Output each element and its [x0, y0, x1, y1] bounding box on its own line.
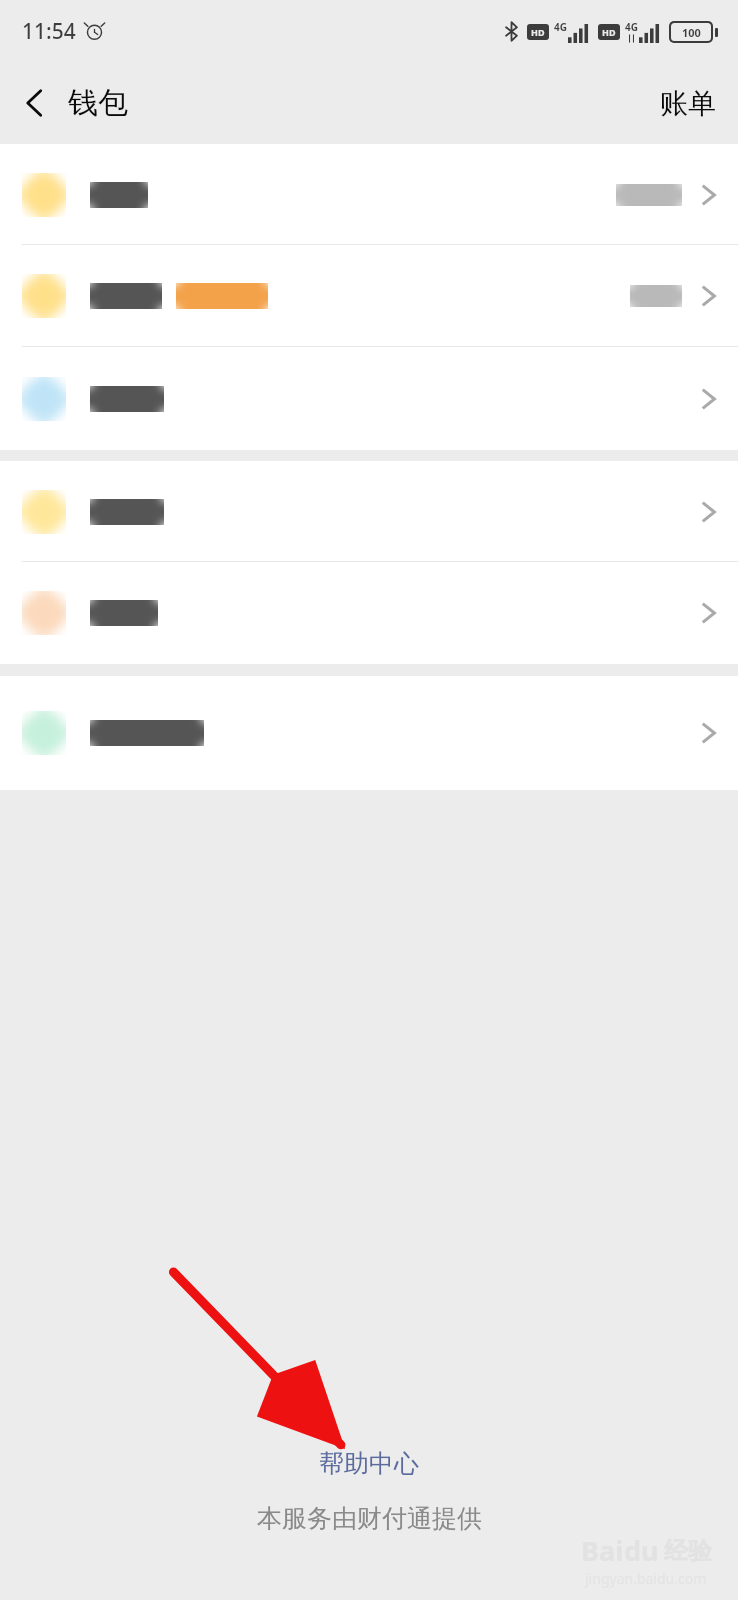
staticText: 4G	[554, 20, 567, 34]
button[interactable]	[0, 347, 738, 450]
button[interactable]	[0, 676, 738, 790]
staticText: HD	[531, 26, 545, 38]
staticText: 帮助中心	[319, 1448, 419, 1479]
staticText: 4G	[625, 20, 638, 34]
staticText: 经验	[664, 1536, 712, 1566]
staticText: HD	[602, 26, 616, 38]
staticText: Bai	[581, 1532, 624, 1569]
button[interactable]	[0, 144, 738, 245]
button[interactable]: 帮助中心	[301, 1442, 437, 1485]
staticText: 钱包	[68, 84, 128, 122]
staticText: 账单	[660, 86, 716, 121]
staticText: du	[624, 1532, 659, 1569]
button[interactable]: Back	[0, 74, 142, 132]
staticText: 100	[682, 25, 701, 40]
button[interactable]	[0, 562, 738, 664]
button[interactable]	[0, 461, 738, 562]
button[interactable]: 账单	[638, 74, 738, 133]
staticText: 11:54	[22, 17, 76, 46]
other: Back	[22, 86, 46, 120]
button[interactable]	[0, 245, 738, 347]
staticText: 本服务由财付通提供	[257, 1503, 482, 1534]
